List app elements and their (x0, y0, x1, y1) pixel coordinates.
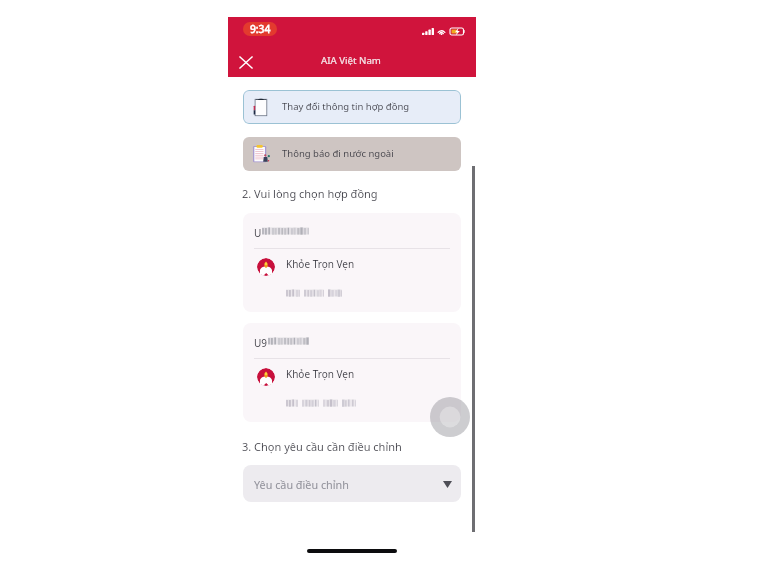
staticText: 9:34 (250, 22, 271, 36)
button[interactable]: Thông báo đi nước ngoài (243, 137, 461, 171)
staticText: Thay đổi thông tin hợp đồng (282, 100, 410, 113)
button[interactable]: Thay đổi thông tin hợp đồng (243, 90, 461, 124)
staticText: 2. Vui lòng chọn hợp đồng (242, 186, 378, 201)
staticText: Khỏe Trọn Vẹn (286, 367, 355, 381)
staticText: 3. Chọn yêu cầu cần điều chỉnh (242, 439, 402, 454)
staticText: Yêu cầu điều chỉnh (254, 477, 349, 492)
staticText: Khỏe Trọn Vẹn (286, 257, 355, 271)
button[interactable]: U (243, 213, 461, 312)
staticText: U (254, 226, 262, 240)
staticText: Thông báo đi nước ngoài (282, 147, 394, 160)
staticText: U9 (254, 336, 268, 350)
button[interactable]: Yêu cầu điều chỉnh (243, 465, 461, 502)
staticText: AIA Việt Nam (227, 54, 475, 67)
button[interactable]: Close (234, 51, 257, 74)
button[interactable]: U9 (243, 323, 461, 422)
